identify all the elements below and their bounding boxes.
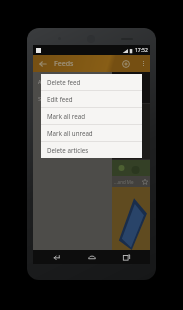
button[interactable]: Mark all read <box>41 108 142 124</box>
staticText: ALL FEEDS <box>38 78 64 85</box>
staticText: Feeds <box>54 59 74 69</box>
button[interactable]: ...and Me <box>112 176 150 187</box>
button[interactable]: Edit feed <box>41 91 142 107</box>
staticText: Starred <box>38 95 59 103</box>
button[interactable]: Delete articles <box>41 142 142 158</box>
button[interactable]: Back <box>35 55 51 72</box>
staticText: Delete articles <box>47 146 89 154</box>
staticText: ...and Me <box>114 179 134 185</box>
button[interactable] <box>112 160 150 176</box>
button[interactable] <box>112 104 150 159</box>
staticText: Delete feed <box>47 78 81 86</box>
button[interactable]: Recent apps <box>116 250 136 264</box>
button[interactable]: Delete feed <box>41 74 142 90</box>
staticText: Mark all unread <box>47 129 93 137</box>
staticText: Mark all read <box>47 112 86 120</box>
button[interactable]: Back <box>47 250 67 264</box>
button[interactable]: Home <box>82 250 102 264</box>
button[interactable]: Mark all unread <box>41 125 142 141</box>
button[interactable]: Starred <box>33 90 112 108</box>
button[interactable] <box>112 187 150 250</box>
button[interactable]: More options <box>136 55 150 72</box>
staticText: 17:52 <box>135 47 148 54</box>
button[interactable]: Add feed <box>118 56 134 72</box>
button[interactable]: ALL FEEDS <box>33 72 112 90</box>
button[interactable] <box>112 72 150 103</box>
staticText: Edit feed <box>47 95 73 103</box>
